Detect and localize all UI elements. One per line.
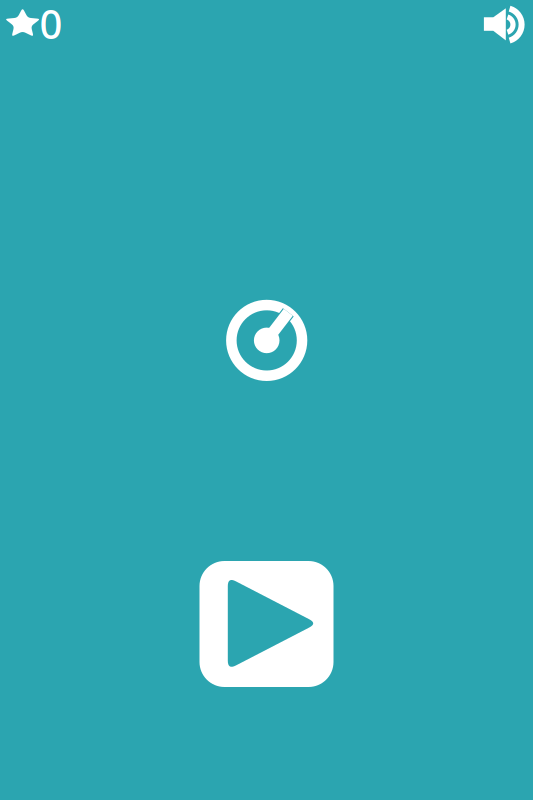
button[interactable]: Play (199, 561, 333, 687)
button[interactable]: Sound (480, 0, 533, 48)
staticText: 0 (39, 0, 62, 50)
